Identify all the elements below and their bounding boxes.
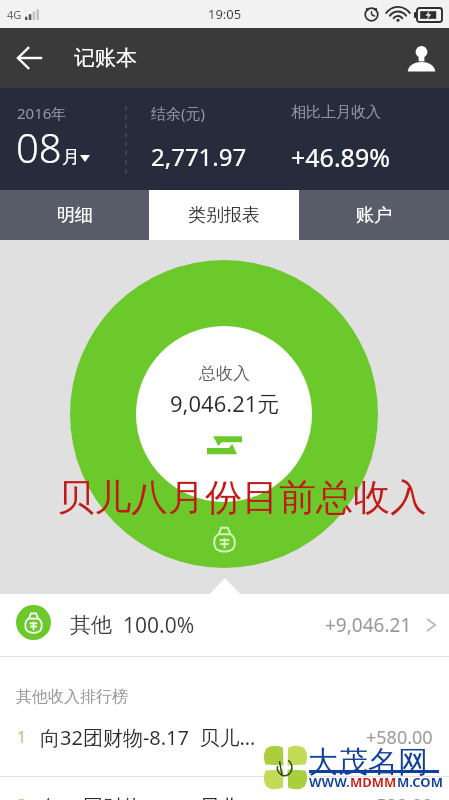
staticText: 其他收入排行榜 bbox=[16, 687, 128, 707]
staticText: +580.00 bbox=[366, 725, 433, 750]
staticText: 2,771.97 bbox=[151, 140, 247, 173]
staticText: 08 bbox=[16, 120, 62, 174]
staticText: 类别报表 bbox=[188, 204, 260, 227]
staticText: MDMM bbox=[350, 773, 397, 791]
staticText: 19:05 bbox=[208, 5, 242, 23]
staticText: 1 bbox=[17, 726, 27, 748]
staticText: 9,046.21元 bbox=[170, 388, 280, 418]
staticText: 贝儿八月份目前总收入 bbox=[57, 474, 427, 521]
staticText: 其他 bbox=[70, 612, 112, 638]
button[interactable]: Back bbox=[0, 28, 58, 88]
button[interactable]: 明细 bbox=[0, 190, 149, 240]
button[interactable]: 2 bbox=[0, 793, 449, 800]
staticText: 100.0% bbox=[123, 611, 195, 640]
staticText: M.COM bbox=[397, 773, 443, 791]
staticText: 账户 bbox=[356, 204, 392, 227]
staticText: 月 bbox=[62, 146, 80, 169]
staticText: 明细 bbox=[57, 204, 93, 227]
staticText: 相比上月收入 bbox=[291, 103, 381, 122]
staticText: +9,046.21 bbox=[325, 612, 412, 638]
staticText: +46.89% bbox=[291, 140, 390, 174]
staticText: 2 bbox=[17, 794, 27, 800]
staticText: +520.00 bbox=[366, 793, 433, 800]
staticText: 4G bbox=[7, 7, 22, 22]
staticText: 2016年 bbox=[17, 103, 67, 123]
staticText: 结余(元) bbox=[151, 103, 206, 123]
staticText: 大茂名网 bbox=[308, 743, 428, 781]
button[interactable]: 1 bbox=[0, 713, 449, 761]
button[interactable]: 其他 bbox=[0, 594, 449, 656]
staticText: 向32团财物-8.14 贝儿… bbox=[40, 793, 256, 800]
button[interactable]: Account bbox=[393, 28, 449, 88]
staticText: 总收入 bbox=[199, 363, 250, 384]
staticText: WWW. bbox=[309, 773, 350, 791]
staticText: 记账本 bbox=[74, 45, 137, 71]
button[interactable]: 账户 bbox=[299, 190, 449, 240]
staticText: 向32团财物-8.17 贝儿… bbox=[40, 724, 256, 751]
button[interactable]: 类别报表 bbox=[149, 190, 299, 240]
